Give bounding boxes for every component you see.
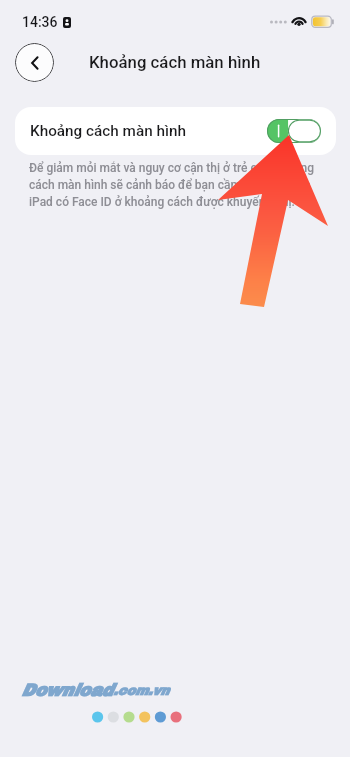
staticText: Khoảng cách màn hình: [30, 122, 186, 140]
button[interactable]: Screen Distance toggle, on: [267, 119, 321, 143]
staticText: Khoảng cách màn hình: [89, 52, 261, 72]
staticText: Để giảm mỏi mắt và nguy cơ cận thị ở trẻ…: [29, 161, 314, 175]
staticText: cách màn hình sẽ cảnh báo để bạn cầm iPh…: [29, 178, 311, 192]
staticText: .com.vn: [113, 684, 169, 698]
staticText: Download: [21, 681, 113, 699]
button[interactable]: Back: [15, 43, 54, 82]
staticText: 14:36: [22, 14, 58, 30]
staticText: iPad có Face ID ở khoảng cách được khuyế…: [29, 195, 295, 209]
button[interactable]: Khoảng cách màn hình: [15, 107, 336, 155]
